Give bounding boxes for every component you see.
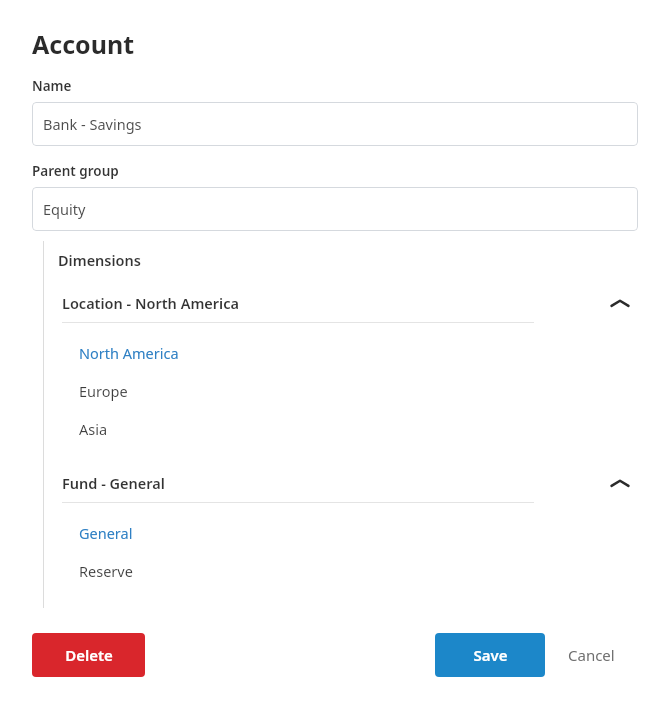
button[interactable]: Cancel (545, 633, 638, 677)
button[interactable]: Asia (62, 410, 638, 448)
button[interactable]: Save (435, 633, 545, 677)
staticText: Parent group (32, 162, 119, 180)
staticText: Location - North America (62, 293, 602, 313)
staticText: Dimensions (58, 250, 141, 270)
staticText: Delete (65, 645, 113, 665)
button[interactable]: Equity (32, 187, 638, 231)
staticText: North America (79, 343, 179, 363)
staticText: Account (32, 27, 135, 61)
button[interactable]: General (62, 514, 638, 552)
button[interactable]: North America (62, 334, 638, 372)
staticText: Reserve (79, 561, 133, 581)
button[interactable]: Europe (62, 372, 638, 410)
button[interactable]: Bank - Savings (32, 102, 638, 146)
button[interactable]: Location - North America (62, 289, 638, 317)
other: Collapse Location - North America (602, 289, 638, 317)
button[interactable]: Delete (32, 633, 145, 677)
staticText: Europe (79, 381, 128, 401)
staticText: Cancel (568, 645, 615, 665)
staticText: Bank - Savings (43, 114, 142, 134)
staticText: General (79, 523, 133, 543)
button[interactable]: Fund - General (62, 469, 638, 497)
staticText: Save (473, 645, 508, 665)
staticText: Fund - General (62, 473, 602, 493)
staticText: Name (32, 77, 72, 95)
other: Collapse Fund - General (602, 469, 638, 497)
staticText: Asia (79, 419, 108, 439)
button[interactable]: Reserve (62, 552, 638, 590)
staticText: Equity (43, 199, 86, 219)
